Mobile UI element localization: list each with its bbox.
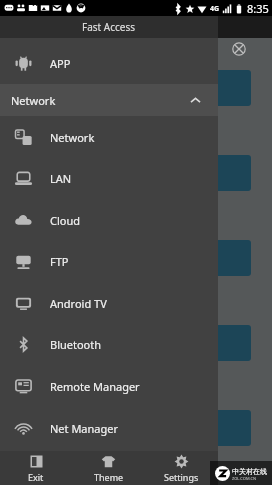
staticText: Settings [164, 471, 199, 483]
button[interactable]: FTP [0, 241, 218, 282]
staticText: Remote Manager [50, 379, 140, 394]
button[interactable]: Exit [0, 454, 72, 483]
button[interactable]: Close [228, 38, 250, 60]
staticText: Theme [94, 471, 124, 483]
button[interactable]: Android TV [0, 282, 218, 324]
staticText: Exit [28, 471, 44, 483]
staticText: FTP [50, 254, 69, 269]
button[interactable]: Bluetooth [0, 324, 218, 365]
staticText: Fast Access [82, 20, 136, 34]
staticText: Network [50, 130, 95, 145]
button[interactable]: Download [0, 396, 272, 481]
staticText: APP [50, 56, 71, 71]
button[interactable]: Settings [145, 454, 218, 483]
staticText: Network [11, 93, 56, 108]
staticText: LAN [50, 171, 72, 186]
button[interactable]: APP [0, 42, 218, 84]
staticText: amazonmp3 [96, 109, 176, 124]
button[interactable]: Network [0, 116, 218, 158]
button[interactable]: DCIM [0, 311, 272, 396]
button[interactable]: Theme [72, 454, 145, 483]
staticText: 4G [210, 4, 220, 14]
staticText: 8:35 [247, 1, 269, 16]
button[interactable]: Cloud [0, 199, 218, 241]
button[interactable]: LAN [0, 158, 218, 199]
button[interactable]: Remote Manager [0, 365, 218, 407]
button[interactable]: backups [0, 141, 272, 226]
staticText: Download [96, 449, 176, 464]
staticText: ZOL.COM.CN [232, 476, 256, 481]
staticText: Bluetooth [50, 337, 102, 352]
button[interactable]: Net Manager [0, 407, 218, 449]
button[interactable]: amazonmp3 [0, 56, 272, 141]
staticText: Net Manager [50, 421, 119, 436]
button[interactable]: Network [0, 84, 218, 116]
staticText: 中关村在线 [232, 467, 267, 476]
staticText: Cloud [50, 213, 81, 228]
button[interactable]: chaosControl [0, 226, 272, 311]
staticText: Android TV [50, 296, 107, 311]
